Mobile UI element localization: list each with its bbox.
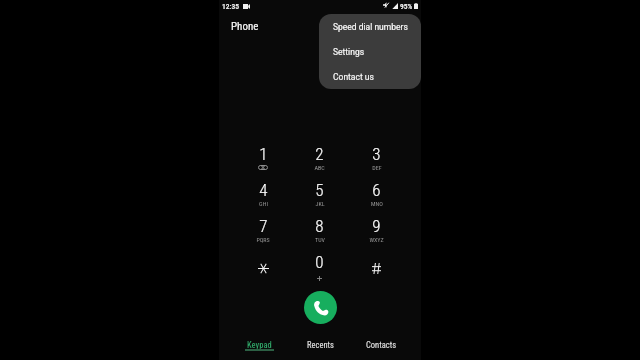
button[interactable]: 1 [235, 141, 291, 177]
button[interactable]: 2 [291, 141, 348, 177]
button[interactable]: 8 [291, 213, 348, 249]
staticText: TUV [315, 236, 325, 243]
staticText: 1 [259, 144, 268, 164]
staticText: Recents [307, 340, 334, 350]
staticText: 5 [315, 180, 324, 200]
staticText: 6 [372, 180, 381, 200]
staticText: ABC [314, 164, 325, 171]
button[interactable]: 4 [235, 177, 291, 213]
button[interactable]: Recents [290, 340, 351, 360]
staticText: 0 [315, 252, 324, 272]
button[interactable]: Pound [348, 249, 405, 285]
button[interactable]: Contact us [319, 64, 421, 89]
staticText: 9 [372, 216, 381, 236]
staticText: 3 [372, 144, 381, 164]
staticText: Keypad [247, 340, 272, 350]
button[interactable]: Star [235, 249, 291, 285]
button[interactable]: 7 [235, 213, 291, 249]
button[interactable]: Contacts [351, 340, 412, 360]
staticText: WXYZ [369, 236, 384, 243]
staticText: 8 [315, 216, 324, 236]
staticText: Contact us [333, 72, 374, 82]
button[interactable]: Speed dial numbers [319, 14, 421, 39]
button[interactable]: Call [304, 291, 337, 324]
staticText: 12:35 [222, 2, 239, 11]
staticText: 2 [315, 144, 324, 164]
button[interactable]: 6 [348, 177, 405, 213]
staticText: PQRS [256, 236, 270, 243]
button[interactable]: More options [395, 16, 415, 36]
button[interactable]: Settings [319, 39, 421, 64]
button[interactable]: 3 [348, 141, 405, 177]
staticText: MNO [371, 200, 383, 207]
staticText: Contacts [366, 340, 397, 350]
button[interactable]: Keypad [228, 340, 290, 360]
staticText: DEF [372, 164, 382, 171]
button[interactable]: 5 [291, 177, 348, 213]
staticText: Speed dial numbers [333, 22, 408, 32]
staticText: JKL [315, 200, 325, 207]
staticText: 7 [259, 216, 268, 236]
button[interactable]: Search [369, 16, 389, 36]
staticText: 95% [400, 2, 413, 11]
staticText: GHI [259, 200, 268, 207]
staticText: 4 [259, 180, 268, 200]
button[interactable]: 9 [348, 213, 405, 249]
button[interactable]: 0 [291, 249, 348, 285]
staticText: Settings [333, 47, 365, 57]
staticText: Phone [231, 20, 259, 33]
